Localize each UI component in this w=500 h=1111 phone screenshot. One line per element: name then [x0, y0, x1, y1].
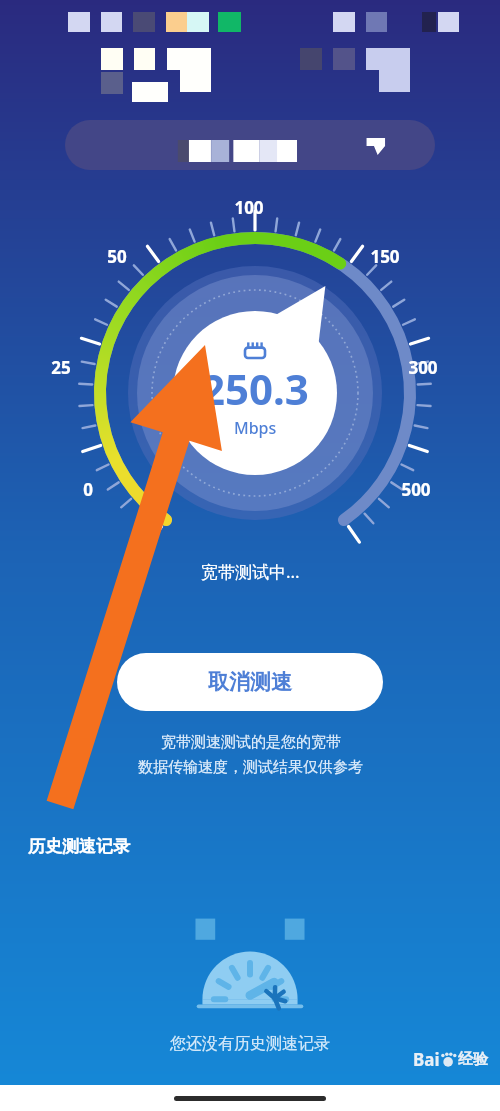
staticText: Bai	[413, 1048, 440, 1071]
staticText: 500	[401, 478, 431, 501]
staticText: 取消测速	[208, 669, 292, 695]
staticText: 100	[234, 196, 264, 219]
staticText: 300	[408, 356, 438, 379]
staticText: 经验	[458, 1050, 488, 1069]
staticText: 宽带测试中...	[201, 560, 300, 583]
staticText: 数据传输速度，测试结果仅供参考	[138, 758, 363, 777]
staticText: 250.3	[201, 360, 309, 417]
staticText: 宽带测速测试的是您的宽带	[161, 733, 341, 752]
button[interactable]: 历史测速记录	[28, 836, 130, 857]
staticText: 50	[107, 245, 127, 268]
staticText: 25	[51, 356, 71, 379]
staticText: 您还没有历史测速记录	[170, 1034, 330, 1054]
staticText: 150	[370, 245, 400, 268]
button[interactable]: Search	[65, 120, 435, 170]
button[interactable]: 取消测速	[117, 653, 383, 711]
staticText: Mbps	[234, 417, 277, 439]
staticText: 0	[83, 478, 93, 501]
